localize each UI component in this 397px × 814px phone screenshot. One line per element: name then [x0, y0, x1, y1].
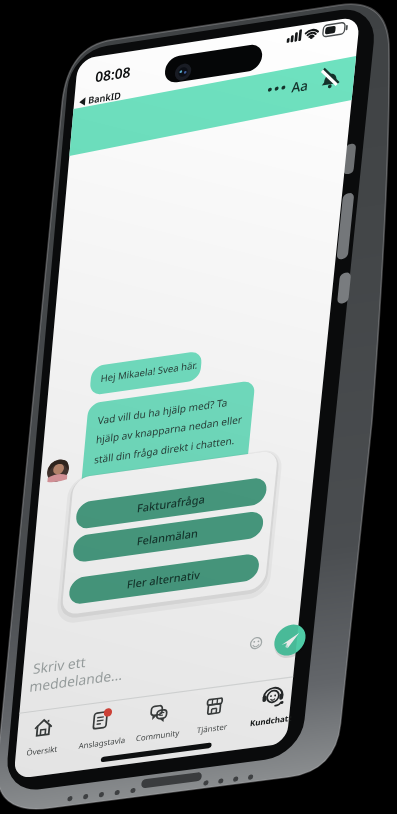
button[interactable] [320, 60, 342, 85]
button[interactable] [72, 565, 258, 610]
button[interactable] [272, 623, 308, 658]
button[interactable] [292, 75, 312, 95]
button[interactable] [80, 520, 265, 565]
button[interactable] [88, 476, 278, 525]
button[interactable] [28, 700, 68, 745]
button[interactable] [247, 680, 295, 728]
button[interactable] [140, 688, 183, 730]
button[interactable] [85, 692, 130, 740]
button[interactable] [248, 620, 268, 640]
button[interactable] [30, 645, 230, 700]
button[interactable] [268, 80, 288, 95]
button[interactable] [196, 682, 237, 725]
